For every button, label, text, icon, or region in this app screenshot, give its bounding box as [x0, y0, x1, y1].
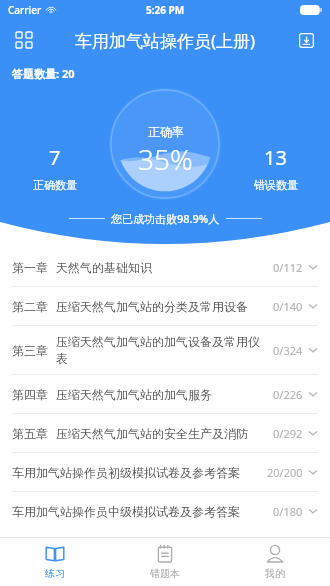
staticText: 0/226 [273, 387, 303, 402]
staticText: 5:26 PM [146, 3, 185, 17]
button[interactable]: 练习 [0, 538, 110, 586]
staticText: 正确数量 [33, 178, 77, 192]
staticText: 车用加气站操作员初级模拟试卷及参考答案 [12, 465, 261, 480]
staticText: 压缩天然气加气站的加气设备及常用仪表 [56, 334, 267, 366]
staticText: 13 [264, 144, 287, 171]
staticText: 错题本 [150, 567, 180, 580]
button[interactable]: 第二章 [0, 287, 330, 325]
staticText: 0/324 [273, 343, 303, 358]
staticText: 答题数量: 20 [12, 66, 75, 81]
button[interactable]: Download [288, 22, 324, 58]
staticText: 练习 [45, 567, 65, 580]
staticText: 车用加气站操作员(上册) [75, 29, 256, 52]
staticText: 我的 [265, 567, 285, 580]
staticText: 0/180 [273, 504, 303, 519]
button[interactable]: 车用加气站操作员中级模拟试卷及参考答案 [0, 492, 330, 530]
button[interactable]: Menu [6, 22, 42, 58]
staticText: 7 [49, 144, 61, 171]
staticText: 第五章 [12, 426, 48, 441]
staticText: 压缩天然气加气站的分类及常用设备 [56, 299, 267, 314]
button[interactable]: 第一章 [0, 248, 330, 286]
button[interactable]: 车用加气站操作员初级模拟试卷及参考答案 [0, 453, 330, 491]
staticText: 天然气的基础知识 [56, 260, 267, 275]
staticText: 您已成功击败98.9%人 [111, 211, 220, 226]
staticText: 错误数量 [254, 178, 298, 192]
staticText: 第三章 [12, 343, 48, 358]
staticText: 车用加气站操作员中级模拟试卷及参考答案 [12, 504, 267, 519]
button[interactable]: 第四章 [0, 375, 330, 413]
button[interactable]: 错题本 [110, 538, 220, 586]
staticText: 第一章 [12, 260, 48, 275]
button[interactable]: 第三章 [0, 326, 330, 374]
staticText: 压缩天然气加气站的安全生产及消防 [56, 426, 267, 441]
staticText: 35% [138, 140, 193, 178]
staticText: 第四章 [12, 387, 48, 402]
button[interactable]: 我的 [220, 538, 330, 586]
staticText: 第二章 [12, 299, 48, 314]
staticText: 压缩天然气加气站的加气服务 [56, 387, 267, 402]
staticText: 0/112 [273, 260, 303, 275]
staticText: Carrier [8, 3, 42, 17]
staticText: 0/292 [273, 426, 303, 441]
button[interactable]: 第五章 [0, 414, 330, 452]
staticText: 正确率 [148, 124, 184, 139]
staticText: 20/200 [267, 465, 303, 480]
staticText: 0/140 [273, 299, 303, 314]
